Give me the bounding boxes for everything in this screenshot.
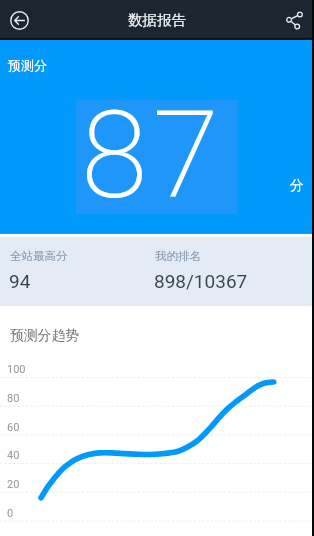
staticText: 94 xyxy=(9,270,31,292)
staticText: 数据报告 xyxy=(128,11,186,29)
staticText: 预测分趋势 xyxy=(10,327,79,344)
staticText: 预测分 xyxy=(8,57,47,73)
staticText: 分 xyxy=(290,177,304,194)
button[interactable]: Back xyxy=(6,7,32,33)
staticText: 100 xyxy=(7,363,26,376)
staticText: 20 xyxy=(7,478,20,491)
staticText: 全站最高分 xyxy=(10,249,68,263)
button[interactable]: Share xyxy=(280,6,308,34)
staticText: 898/10367 xyxy=(154,270,248,292)
staticText: 60 xyxy=(7,421,20,434)
staticText: 80 xyxy=(7,392,20,405)
staticText: 0 xyxy=(7,507,14,520)
staticText: 40 xyxy=(7,449,20,462)
staticText: 87 xyxy=(81,85,225,227)
staticText: 我的排名 xyxy=(155,249,201,263)
